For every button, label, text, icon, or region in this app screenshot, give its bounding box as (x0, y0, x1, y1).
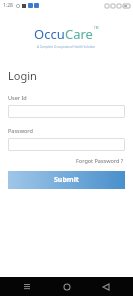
staticText: Care (65, 25, 93, 43)
staticText: Password (8, 127, 33, 134)
staticText: Login (8, 68, 37, 83)
button[interactable]: Forgot Password ? (75, 156, 125, 165)
button[interactable] (8, 105, 125, 118)
staticText: Submit (54, 175, 79, 185)
staticText: Forgot Password ? (76, 157, 124, 164)
button[interactable] (8, 138, 125, 151)
button[interactable]: Submit (8, 171, 125, 189)
staticText: TM (94, 26, 99, 30)
button[interactable]: Recents (14, 277, 40, 296)
button[interactable]: Back (93, 277, 119, 296)
button[interactable]: Home (54, 277, 80, 296)
staticText: Occu (34, 25, 65, 43)
staticText: User Id (8, 94, 27, 101)
staticText: A Complete Occupational Health Solution (37, 45, 96, 49)
staticText: 1:28 (3, 2, 13, 9)
